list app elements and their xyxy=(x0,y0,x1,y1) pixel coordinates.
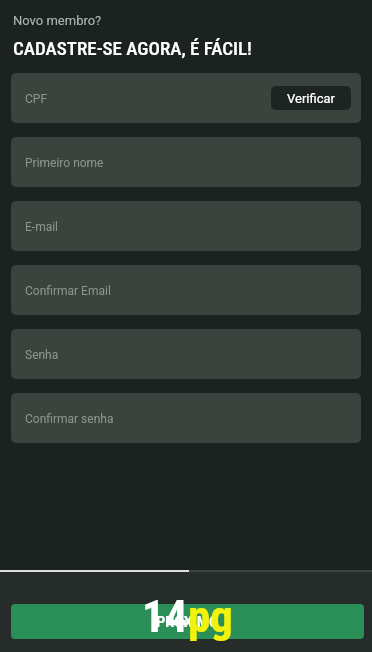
staticText: Primeiro nome xyxy=(25,156,104,170)
staticText: Confirmar senha xyxy=(25,412,114,426)
staticText: CPF xyxy=(25,92,48,106)
button[interactable]: Senha xyxy=(11,329,361,379)
staticText: PRÓXIMO xyxy=(156,614,219,630)
staticText: CADASTRE-SE AGORA, É FÁCIL! xyxy=(13,37,252,59)
staticText: Senha xyxy=(25,348,59,362)
button[interactable]: Primeiro nome xyxy=(11,137,361,187)
button[interactable]: Verificar xyxy=(271,86,351,110)
staticText: Novo membro? xyxy=(13,13,102,28)
staticText: 14 xyxy=(142,590,188,643)
button[interactable]: CPF xyxy=(11,73,361,123)
staticText: pg xyxy=(188,590,233,643)
staticText: Verificar xyxy=(287,91,335,106)
button[interactable]: PRÓXIMO xyxy=(11,604,364,639)
button[interactable]: E-mail xyxy=(11,201,361,251)
staticText: Confirmar Email xyxy=(25,284,111,298)
staticText: E-mail xyxy=(25,220,59,234)
button[interactable]: Confirmar Email xyxy=(11,265,361,315)
button[interactable]: Confirmar senha xyxy=(11,393,361,443)
